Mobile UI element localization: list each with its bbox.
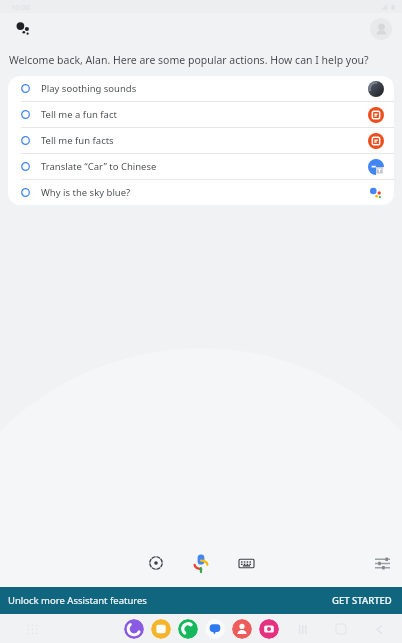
button[interactable]: Camera	[259, 619, 279, 639]
staticText: Translate “Car” to Chinese	[41, 160, 157, 173]
staticText: Play soothing sounds	[41, 82, 137, 95]
button[interactable]: Translate “Car” to Chinese	[8, 154, 394, 179]
staticText: Unlock more Assistant features	[8, 594, 147, 607]
button[interactable]: Phone	[178, 619, 198, 639]
button[interactable]: Assistant	[8, 13, 40, 45]
button[interactable]: Unlock more Assistant features	[0, 587, 402, 614]
staticText: Why is the sky blue?	[41, 186, 131, 199]
button[interactable]: Lens	[141, 548, 171, 578]
button[interactable]: Voice search	[185, 547, 217, 579]
button[interactable]: Recents	[294, 620, 312, 638]
staticText: GET STARTED	[332, 594, 392, 607]
button[interactable]: Home	[332, 620, 350, 638]
button[interactable]: Contacts	[232, 619, 252, 639]
button[interactable]: Messages	[205, 619, 225, 639]
staticText: 10:00	[11, 2, 31, 12]
staticText: Tell me a fun fact	[41, 108, 117, 121]
staticText: Welcome back, Alan. Here are some popula…	[9, 53, 369, 67]
button[interactable]: Play soothing sounds	[8, 76, 394, 101]
button[interactable]: Keyboard	[231, 548, 261, 578]
button[interactable]: Account	[370, 18, 392, 40]
button[interactable]: Settings	[368, 549, 396, 577]
button[interactable]: GET STARTED	[328, 592, 396, 609]
button[interactable]: Gallery	[151, 619, 171, 639]
staticText: Tell me fun facts	[41, 134, 114, 147]
button[interactable]: Samsung Internet	[124, 619, 144, 639]
button[interactable]: Why is the sky blue?	[8, 180, 394, 205]
button[interactable]: Tell me a fun fact	[8, 102, 394, 127]
button[interactable]: Tell me fun facts	[8, 128, 394, 153]
